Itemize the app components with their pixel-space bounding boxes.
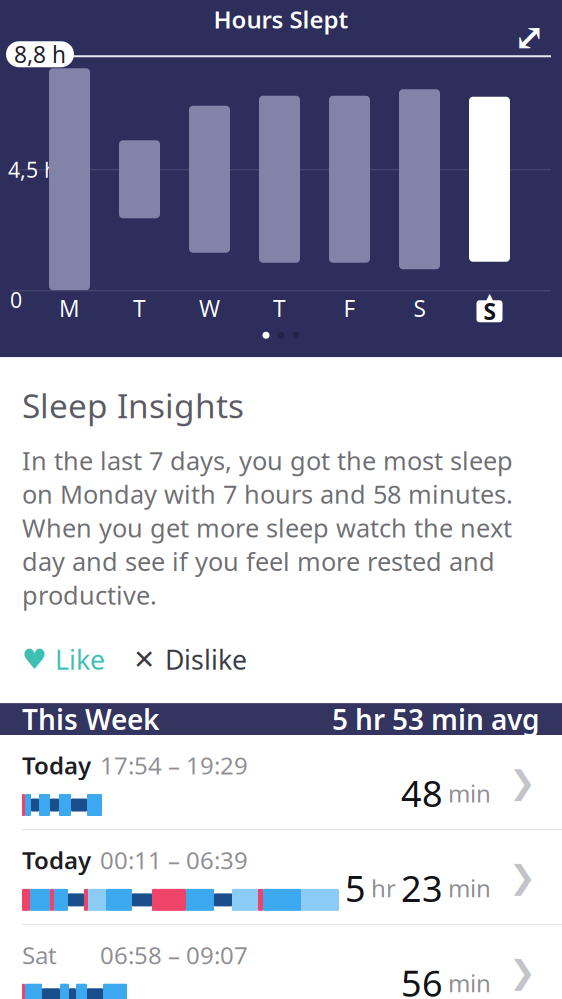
staticText: W bbox=[199, 293, 220, 323]
staticText: 00:11 – 06:39 bbox=[100, 844, 248, 876]
staticText: Sat bbox=[22, 939, 57, 971]
staticText: 5 bbox=[345, 864, 366, 912]
staticText: 8,8 h bbox=[14, 39, 66, 69]
staticText: 0 bbox=[10, 286, 22, 314]
staticText: 17:54 – 19:29 bbox=[100, 749, 248, 781]
staticText: T bbox=[273, 293, 286, 323]
staticText: S bbox=[483, 296, 495, 326]
staticText: S bbox=[413, 293, 425, 323]
staticText: ❯ bbox=[509, 764, 536, 800]
staticText: min bbox=[448, 872, 491, 904]
staticText: 5 hr 53 min avg bbox=[332, 700, 540, 738]
staticText: 06:58 – 09:07 bbox=[100, 939, 248, 971]
staticText: T bbox=[133, 293, 146, 323]
button[interactable]: ♥ bbox=[22, 634, 119, 685]
staticText: min bbox=[448, 967, 491, 999]
staticText: Hours Slept bbox=[213, 3, 348, 35]
staticText: ❯ bbox=[509, 859, 536, 895]
staticText: Like bbox=[55, 642, 105, 677]
button[interactable]: Today bbox=[0, 830, 562, 925]
staticText: In the last 7 days, you got the most sle… bbox=[22, 443, 513, 612]
staticText: 56 bbox=[401, 959, 443, 999]
button[interactable]: Expand chart bbox=[506, 17, 552, 57]
staticText: ♥ bbox=[22, 643, 47, 675]
staticText: ❯ bbox=[509, 954, 536, 990]
staticText: 48 bbox=[401, 769, 443, 817]
staticText: ⤢ bbox=[513, 16, 544, 59]
staticText: Sleep Insights bbox=[22, 383, 244, 427]
staticText: M bbox=[59, 293, 80, 323]
staticText: min bbox=[448, 777, 491, 809]
staticText: ▲ bbox=[485, 290, 494, 304]
staticText: Today bbox=[22, 749, 91, 781]
button[interactable]: ✕ bbox=[119, 634, 261, 685]
staticText: F bbox=[343, 293, 355, 323]
staticText: Dislike bbox=[165, 642, 247, 677]
staticText: Today bbox=[22, 844, 91, 876]
button[interactable]: Sat bbox=[0, 925, 562, 999]
staticText: 4,5 h bbox=[8, 155, 57, 183]
staticText: ✕ bbox=[133, 644, 155, 675]
staticText: 23 bbox=[401, 864, 443, 912]
button[interactable]: Today bbox=[0, 735, 562, 830]
staticText: This Week bbox=[22, 700, 159, 738]
staticText: hr bbox=[371, 872, 396, 904]
